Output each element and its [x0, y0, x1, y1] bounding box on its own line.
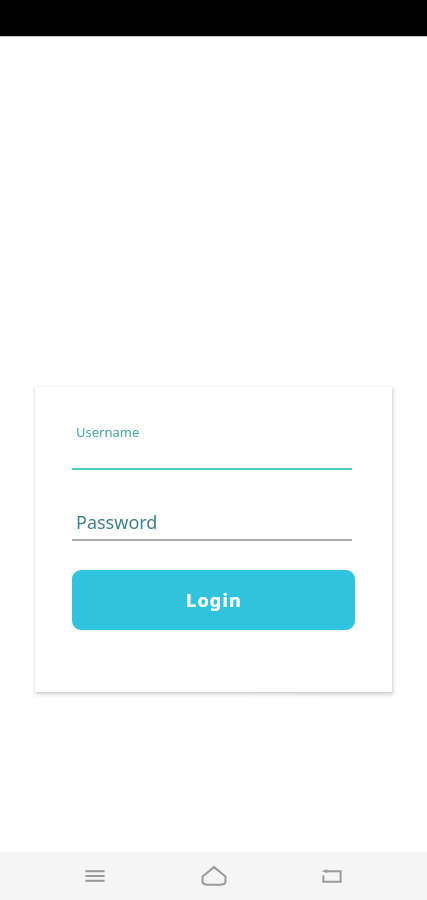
staticText: Username	[76, 423, 140, 441]
button[interactable]: Username	[35, 423, 392, 470]
button[interactable]: Login	[72, 570, 355, 630]
staticText: Login	[186, 588, 242, 613]
button[interactable]: Password	[35, 510, 392, 541]
button[interactable]: Home	[190, 852, 238, 900]
staticText: Password	[76, 510, 158, 535]
button[interactable]: Back	[308, 852, 356, 900]
button[interactable]: Recent apps	[71, 852, 119, 900]
